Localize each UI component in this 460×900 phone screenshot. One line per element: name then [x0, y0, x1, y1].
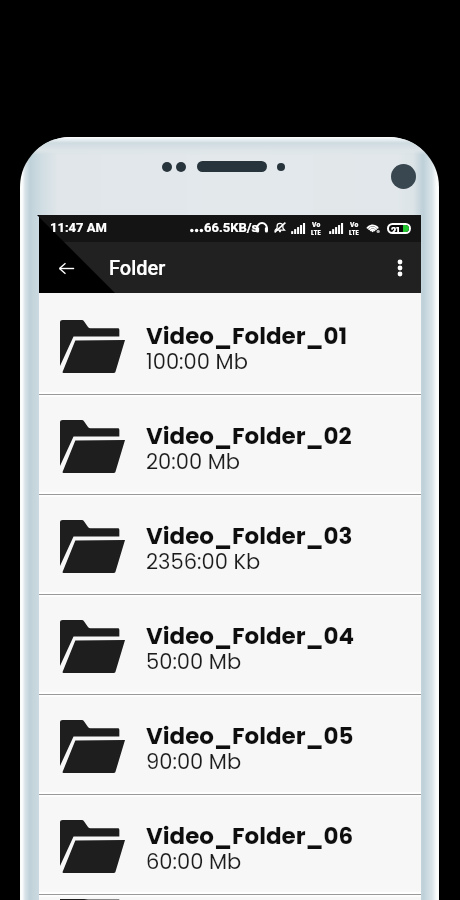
staticText: Video_Folder_01: [146, 320, 348, 352]
staticText: Video_Folder_03: [146, 520, 353, 552]
staticText: 11:47 AM: [50, 220, 107, 235]
staticText: 21: [391, 225, 400, 232]
button[interactable]: Video_Folder_01: [39, 297, 421, 392]
staticText: 2356:00 Kb: [146, 547, 261, 576]
staticText: 50:00 Mb: [146, 647, 242, 676]
button[interactable]: Video_Folder_04: [39, 597, 421, 692]
staticText: Vo: [350, 221, 359, 229]
staticText: 90:00 Mb: [146, 747, 242, 776]
button[interactable]: More options: [376, 244, 424, 292]
staticText: 66.5KB/s: [204, 220, 259, 235]
button[interactable]: Video_Folder_07: [39, 897, 421, 900]
staticText: LTE: [311, 229, 321, 237]
button[interactable]: Video_Folder_03: [39, 497, 421, 592]
staticText: LTE: [349, 229, 359, 237]
button[interactable]: Back: [42, 244, 90, 292]
button[interactable]: Video_Folder_05: [39, 697, 421, 792]
staticText: Vo: [312, 221, 321, 229]
staticText: Video_Folder_05: [146, 720, 354, 752]
staticText: Folder: [109, 256, 166, 279]
button[interactable]: Video_Folder_06: [39, 797, 421, 892]
button[interactable]: Video_Folder_02: [39, 397, 421, 492]
staticText: Video_Folder_02: [146, 420, 352, 452]
staticText: 20:00 Mb: [146, 447, 240, 476]
staticText: Video_Folder_06: [146, 820, 354, 852]
staticText: Video_Folder_04: [146, 620, 355, 652]
staticText: 60:00 Mb: [146, 847, 242, 876]
staticText: 100:00 Mb: [146, 347, 248, 376]
